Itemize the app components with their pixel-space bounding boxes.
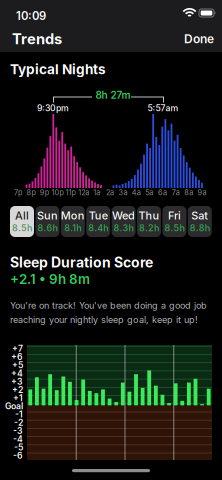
staticText: 1a [93, 188, 100, 197]
staticText: Sun [37, 209, 58, 222]
staticText: Wed [112, 209, 135, 222]
staticText: 8.1h [64, 222, 81, 233]
staticText: +2.1 • 9h 8m [10, 271, 90, 287]
staticText: 8p [27, 188, 36, 197]
staticText: 8.4h [88, 222, 108, 233]
staticText: -2 [14, 417, 23, 428]
staticText: 12a [78, 188, 89, 197]
button[interactable]: Thu [137, 206, 161, 237]
staticText: 11p [65, 188, 75, 197]
staticText: Done [184, 32, 214, 46]
staticText: +3 [11, 376, 23, 387]
staticText: 4a [132, 188, 141, 197]
staticText: 8.5h [164, 222, 184, 233]
staticText: Sat [191, 209, 208, 222]
staticText: -4 [13, 434, 23, 444]
staticText: 7a [172, 188, 180, 197]
staticText: 10p [51, 188, 63, 197]
staticText: Mon [61, 209, 85, 222]
staticText: 5:57am [147, 103, 178, 113]
staticText: +1 [13, 393, 23, 403]
staticText: 8.5h [12, 222, 32, 233]
staticText: 5a [145, 188, 153, 197]
staticText: -5 [14, 442, 23, 452]
staticText: 8a [184, 188, 193, 197]
button[interactable]: Tue [86, 206, 110, 237]
staticText: Sleep Duration Score [10, 254, 153, 271]
button[interactable]: Sun [35, 206, 59, 237]
staticText: Typical Nights [10, 61, 106, 77]
staticText: 9:30pm [37, 103, 69, 113]
staticText: +2 [12, 384, 23, 395]
button[interactable]: Mon [61, 206, 85, 237]
staticText: 9p [40, 188, 49, 197]
staticText: 2a [106, 188, 114, 197]
staticText: 3a [119, 188, 128, 197]
staticText: All [15, 209, 29, 222]
staticText: 8.6h [37, 222, 57, 233]
staticText: Trends [12, 30, 62, 48]
button[interactable]: All [10, 206, 34, 237]
staticText: Thu [138, 209, 159, 222]
staticText: Fri [168, 209, 181, 222]
staticText: -1 [15, 409, 23, 420]
staticText: 6a [158, 188, 167, 197]
staticText: 8.3h [114, 222, 134, 233]
staticText: Goal [5, 401, 23, 411]
staticText: Tue [89, 209, 108, 222]
staticText: -6 [13, 450, 23, 461]
staticText: +5 [12, 360, 23, 370]
button[interactable]: Done [164, 26, 222, 52]
staticText: 8.8h [190, 222, 210, 233]
staticText: 7p [14, 188, 22, 197]
staticText: +7 [12, 343, 23, 354]
button[interactable]: Wed [112, 206, 136, 237]
button[interactable]: Sat [188, 206, 212, 237]
staticText: 8.2h [139, 222, 159, 233]
staticText: -3 [13, 426, 23, 436]
staticText: 10:09 [16, 9, 46, 23]
button[interactable]: Trends [0, 26, 92, 52]
staticText: 8h 27m [95, 89, 130, 101]
staticText: +4 [11, 368, 23, 379]
button[interactable]: Fri [162, 206, 186, 237]
staticText: You're on track! You've been doing a goo… [10, 300, 207, 325]
staticText: 9a [197, 188, 206, 197]
staticText: +6 [11, 352, 23, 362]
